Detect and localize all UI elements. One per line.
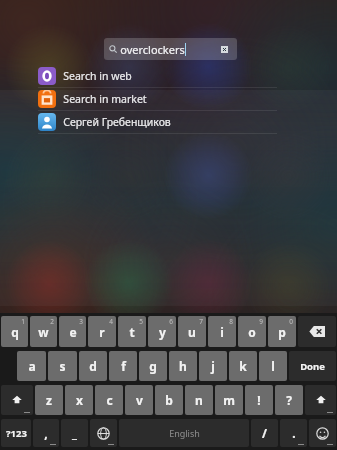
button[interactable]: Emoji <box>309 419 336 447</box>
staticText: English <box>169 427 200 439</box>
button[interactable]: t <box>118 316 146 347</box>
button[interactable]: f <box>109 351 137 381</box>
staticText: _ <box>72 425 77 441</box>
button[interactable]: z <box>35 385 63 415</box>
staticText: y <box>159 324 166 340</box>
button[interactable]: _ <box>61 419 88 447</box>
button[interactable]: Change language <box>90 419 117 447</box>
staticText: x <box>76 392 83 408</box>
button[interactable]: n <box>185 385 213 415</box>
staticText: i <box>220 324 224 340</box>
staticText: z <box>46 392 52 408</box>
staticText: 3 <box>79 317 83 326</box>
button[interactable]: r <box>88 316 116 347</box>
staticText: ! <box>257 392 261 408</box>
staticText: d <box>89 358 97 374</box>
button[interactable]: Сергей Гребенщиков <box>0 111 337 134</box>
staticText: c <box>106 392 113 408</box>
staticText: j <box>211 358 215 374</box>
button[interactable]: ?123 <box>1 419 31 447</box>
staticText: t <box>129 324 135 340</box>
button[interactable]: Backspace <box>298 316 336 347</box>
staticText: 6 <box>169 317 173 326</box>
button[interactable]: l <box>259 351 287 381</box>
button[interactable]: overclockers <box>104 38 237 60</box>
staticText: f <box>121 358 126 374</box>
button[interactable]: g <box>139 351 167 381</box>
button[interactable]: Clear search <box>215 40 233 58</box>
button[interactable]: ? <box>275 385 303 415</box>
button[interactable]: x <box>65 385 93 415</box>
staticText: 9 <box>259 317 263 326</box>
button[interactable]: m <box>215 385 243 415</box>
staticText: overclockers <box>120 42 185 57</box>
staticText: g <box>149 358 157 374</box>
staticText: 5 <box>139 317 143 326</box>
staticText: ?123 <box>6 427 27 440</box>
button[interactable]: k <box>229 351 257 381</box>
staticText: m <box>223 392 235 408</box>
staticText: s <box>59 358 66 374</box>
button[interactable]: Search in market <box>0 88 337 111</box>
button[interactable]: b <box>155 385 183 415</box>
button[interactable]: w <box>30 316 57 347</box>
button[interactable]: s <box>48 351 77 381</box>
staticText: Done <box>300 360 325 373</box>
button[interactable]: Shift <box>1 385 33 415</box>
staticText: v <box>136 392 143 408</box>
button[interactable]: j <box>199 351 227 381</box>
staticText: Сергей Гребенщиков <box>63 115 171 129</box>
staticText: 4 <box>109 317 113 326</box>
button[interactable]: Shift <box>305 385 336 415</box>
staticText: o <box>248 324 256 340</box>
staticText: e <box>69 324 77 340</box>
staticText: 2 <box>50 317 54 326</box>
button[interactable]: d <box>79 351 107 381</box>
button[interactable]: Search in web <box>0 65 337 88</box>
staticText: . <box>292 425 296 441</box>
button[interactable]: h <box>169 351 197 381</box>
staticText: p <box>278 324 286 340</box>
staticText: r <box>99 324 105 340</box>
staticText: Search in market <box>63 92 147 106</box>
staticText: 0 <box>289 317 293 326</box>
staticText: , <box>44 425 48 441</box>
button[interactable]: u <box>178 316 206 347</box>
staticText: b <box>165 392 173 408</box>
button[interactable]: English <box>119 419 249 447</box>
staticText: k <box>239 358 247 374</box>
staticText: Search in web <box>63 69 132 83</box>
staticText: 8 <box>229 317 233 326</box>
button[interactable]: ! <box>245 385 273 415</box>
staticText: q <box>11 324 19 340</box>
staticText: / <box>262 425 267 441</box>
staticText: 7 <box>199 317 203 326</box>
button[interactable]: o <box>238 316 266 347</box>
button[interactable]: i <box>208 316 236 347</box>
button[interactable]: , <box>33 419 59 447</box>
button[interactable]: . <box>280 419 307 447</box>
staticText: ? <box>286 392 292 408</box>
button[interactable]: q <box>1 316 28 347</box>
staticText: u <box>188 324 196 340</box>
staticText: 1 <box>21 317 25 326</box>
button[interactable]: c <box>95 385 123 415</box>
button[interactable]: a <box>17 351 46 381</box>
staticText: n <box>195 392 203 408</box>
staticText: l <box>271 358 275 374</box>
button[interactable]: e <box>59 316 86 347</box>
button[interactable]: y <box>148 316 176 347</box>
button[interactable]: / <box>251 419 278 447</box>
staticText: w <box>38 324 49 340</box>
staticText: h <box>179 358 187 374</box>
staticText: a <box>28 358 36 374</box>
button[interactable]: p <box>268 316 296 347</box>
button[interactable]: v <box>125 385 153 415</box>
button[interactable]: Done <box>289 351 336 381</box>
